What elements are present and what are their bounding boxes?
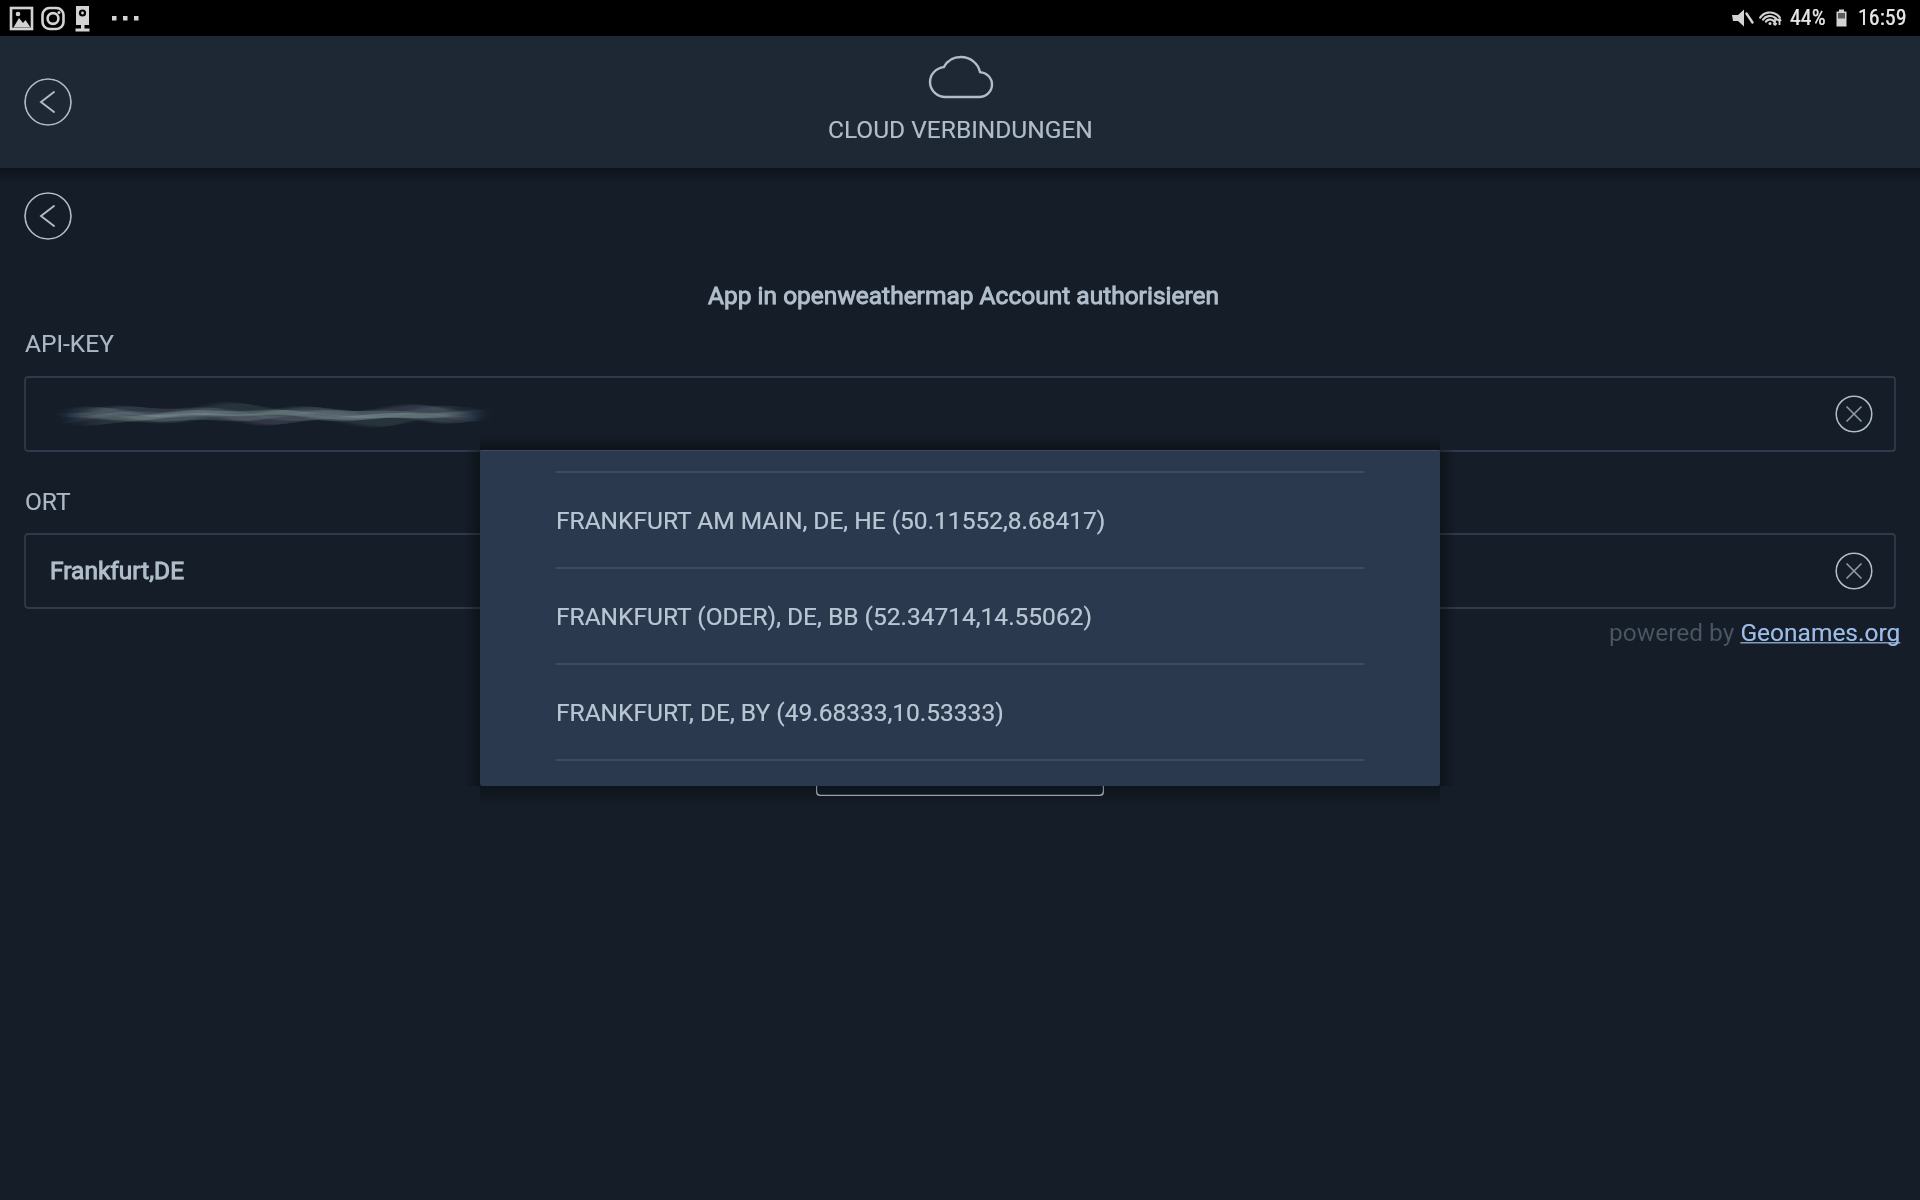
staticText: ORT xyxy=(25,487,71,516)
staticText: powered by Geonames.org xyxy=(1609,618,1901,647)
staticText: CLOUD VERBINDUNGEN xyxy=(828,115,1093,144)
button[interactable]: FRANKFURT, DE, BY (49.68333,10.53333) xyxy=(480,664,1440,760)
button[interactable]: Back xyxy=(24,192,72,240)
button[interactable]: FRANKFURT AM MAIN, DE, HE (50.11552,8.68… xyxy=(480,472,1440,568)
button[interactable]: Clear xyxy=(1835,552,1873,590)
button[interactable]: Frankfurt,DE xyxy=(25,534,1895,608)
staticText: Frankfurt,DE xyxy=(50,556,185,585)
staticText: FRANKFURT AM MAIN, DE, HE (50.11552,8.68… xyxy=(556,506,1106,535)
staticText: API-KEY xyxy=(25,329,114,358)
staticText: FRANKFURT, DE, BY (49.68333,10.53333) xyxy=(556,698,1004,727)
button[interactable]: Back xyxy=(24,78,72,126)
staticText: 44% xyxy=(1790,5,1826,31)
button[interactable]: Clear xyxy=(25,377,1895,451)
staticText: FRANKFURT (ODER), DE, BB (52.34714,14.55… xyxy=(556,602,1092,631)
button[interactable]: FRANKFURT (ODER), DE, BB (52.34714,14.55… xyxy=(480,568,1440,664)
button[interactable]: Clear xyxy=(1835,395,1873,433)
staticText: 16:59 xyxy=(1858,5,1907,31)
staticText: App in openweathermap Account authorisie… xyxy=(708,281,1220,310)
button[interactable] xyxy=(816,739,1104,796)
button[interactable]: powered by Geonames.org xyxy=(1609,618,1901,647)
